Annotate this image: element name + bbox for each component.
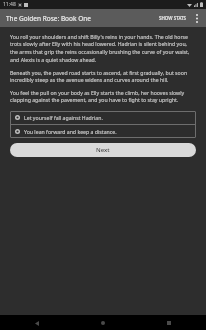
staticText: You feel the pull on your body as Elly s… bbox=[10, 89, 196, 104]
button[interactable]: Recent apps bbox=[162, 316, 176, 330]
staticText: SHOW STATS bbox=[159, 15, 187, 21]
button[interactable]: Next bbox=[10, 143, 196, 157]
button[interactable]: Let yourself fall against Hadrian. bbox=[10, 111, 196, 124]
button[interactable]: You lean forward and keep a distance. bbox=[10, 125, 196, 138]
staticText: The Golden Rose: Book One bbox=[6, 14, 91, 23]
button[interactable]: Home bbox=[96, 316, 110, 330]
staticText: Next bbox=[96, 146, 110, 154]
button[interactable]: SHOW STATS bbox=[156, 12, 190, 24]
staticText: 11:48 bbox=[3, 1, 16, 8]
staticText: You roll your shoulders and shift Billy'… bbox=[10, 33, 196, 64]
staticText: Let yourself fall against Hadrian. bbox=[24, 114, 103, 121]
staticText: Beneath you, the paved road starts to as… bbox=[10, 69, 196, 84]
button[interactable]: More options bbox=[190, 11, 204, 25]
button[interactable]: Back bbox=[30, 316, 44, 330]
staticText: You lean forward and keep a distance. bbox=[24, 128, 117, 135]
